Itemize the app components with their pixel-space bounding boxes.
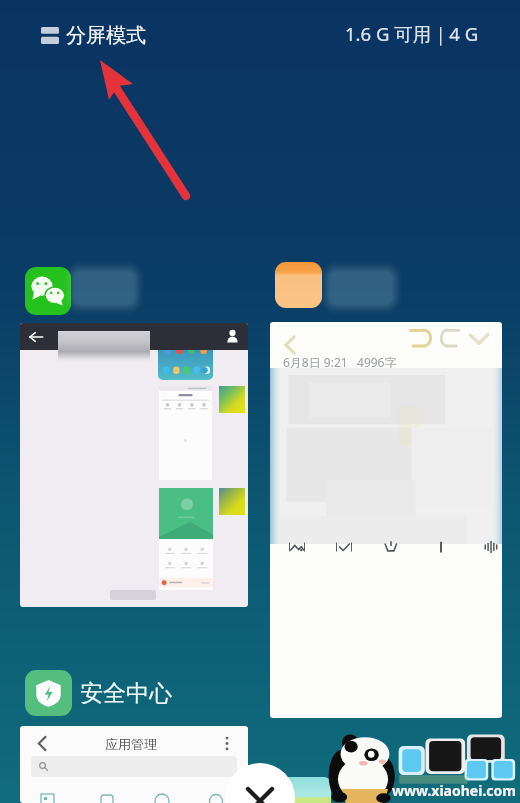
button[interactable] [20,323,248,607]
staticText: 安全中心 [80,679,172,708]
button[interactable]: Notes [275,262,322,308]
button[interactable]: WeChat [25,267,71,315]
button[interactable]: 6月8日 9:21 4996字 [270,322,502,718]
button[interactable]: Close all apps [225,763,295,803]
staticText: 应用管理 [105,736,157,752]
staticText: 分屏模式 [66,23,146,48]
button[interactable]: Security Center [25,670,72,716]
button[interactable]: 应用管理 [20,726,248,803]
button[interactable]: 分屏模式 [38,21,149,50]
staticText: 1.6 G 可用｜4 G [345,21,479,46]
button[interactable] [265,777,331,803]
staticText: www.xiaohei.com [392,781,516,800]
staticText: 6月8日 9:21 4996字 [283,354,397,370]
